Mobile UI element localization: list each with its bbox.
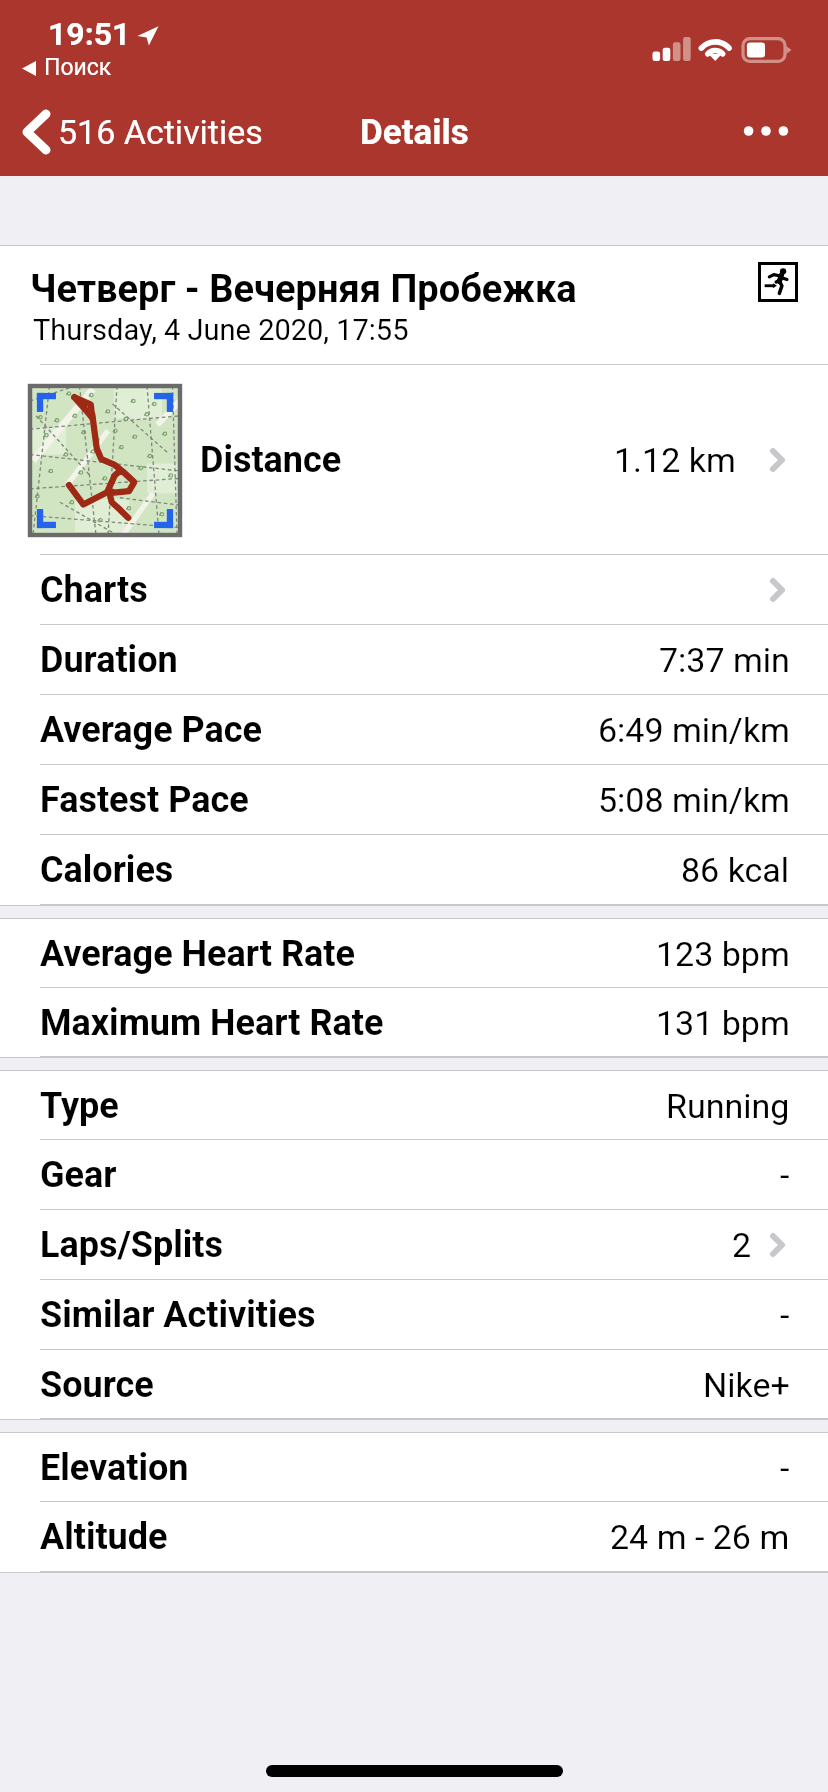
button[interactable]: Calories bbox=[0, 835, 828, 905]
staticText: Distance bbox=[200, 439, 342, 481]
staticText: Maximum Heart Rate bbox=[40, 1002, 384, 1044]
staticText: Calories bbox=[40, 849, 174, 891]
staticText: - bbox=[780, 1295, 790, 1335]
staticText: Четверг - Вечерняя Пробежка bbox=[30, 267, 577, 312]
staticText: Details bbox=[360, 112, 469, 153]
staticText: Similar Activities bbox=[40, 1294, 316, 1336]
staticText: Fastest Pace bbox=[40, 779, 249, 821]
staticText: Thursday, 4 June 2020, 17:55 bbox=[33, 313, 409, 347]
staticText: 5:08 min/km bbox=[598, 780, 790, 820]
staticText: 131 bpm bbox=[656, 1003, 790, 1043]
staticText: 2 bbox=[732, 1225, 752, 1265]
staticText: Altitude bbox=[40, 1516, 168, 1558]
staticText: Type bbox=[40, 1085, 119, 1127]
staticText: 6:49 min/km bbox=[598, 710, 790, 750]
staticText: Gear bbox=[40, 1154, 117, 1196]
button[interactable]: Laps/Splits bbox=[0, 1210, 828, 1280]
button[interactable]: Gear bbox=[0, 1140, 828, 1210]
button[interactable]: 516 Activities bbox=[18, 88, 273, 176]
button[interactable]: Source bbox=[0, 1350, 828, 1419]
button[interactable]: Average Heart Rate bbox=[0, 919, 828, 988]
button[interactable]: Duration bbox=[0, 625, 828, 695]
staticText: Average Pace bbox=[40, 709, 263, 751]
staticText: 19:51 bbox=[48, 15, 131, 53]
staticText: Source bbox=[40, 1364, 154, 1406]
staticText: - bbox=[780, 1155, 790, 1195]
staticText: Поиск bbox=[44, 54, 112, 81]
button[interactable]: Type bbox=[0, 1071, 828, 1140]
staticText: 516 Activities bbox=[58, 112, 263, 152]
staticText: 24 m - 26 m bbox=[610, 1517, 790, 1557]
button[interactable]: Elevation bbox=[0, 1433, 828, 1502]
staticText: Running bbox=[666, 1086, 790, 1126]
button[interactable]: Charts bbox=[0, 555, 828, 625]
button[interactable]: Similar Activities bbox=[0, 1280, 828, 1350]
button[interactable]: Maximum Heart Rate bbox=[0, 988, 828, 1057]
staticText: Elevation bbox=[40, 1447, 189, 1489]
staticText: - bbox=[780, 1448, 790, 1488]
staticText: Charts bbox=[40, 569, 148, 611]
staticText: 123 bpm bbox=[656, 934, 790, 974]
staticText: Laps/Splits bbox=[40, 1224, 223, 1266]
staticText: Nike+ bbox=[703, 1365, 790, 1405]
staticText: Duration bbox=[40, 639, 178, 681]
staticText: 86 kcal bbox=[681, 850, 790, 890]
button[interactable]: Fastest Pace bbox=[0, 765, 828, 835]
button[interactable]: Average Pace bbox=[0, 695, 828, 765]
staticText: 1.12 km bbox=[614, 440, 736, 480]
button[interactable]: Altitude bbox=[0, 1502, 828, 1572]
button[interactable]: Distance bbox=[0, 365, 828, 555]
button[interactable]: Activity type: Running bbox=[758, 262, 798, 302]
staticText: Average Heart Rate bbox=[40, 933, 355, 975]
button[interactable]: More options bbox=[704, 88, 828, 176]
staticText: 7:37 min bbox=[659, 640, 790, 680]
